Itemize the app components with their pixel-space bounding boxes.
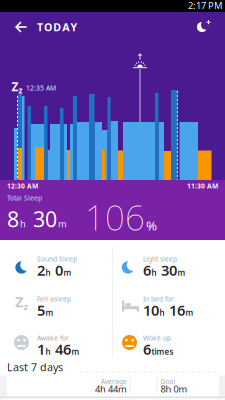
staticText: m [185, 307, 193, 318]
staticText: 46 [51, 339, 71, 359]
staticText: 12:30 AM [7, 182, 38, 190]
staticText: 0 [51, 260, 63, 280]
staticText: m [71, 346, 79, 357]
staticText: Light sleep [143, 255, 177, 263]
staticText: Fell asleep [37, 295, 71, 303]
staticText: Awake for [37, 334, 69, 342]
staticText: 106 [85, 194, 145, 240]
staticText: 2:17 PM [188, 0, 222, 12]
staticText: Z [11, 78, 18, 94]
staticText: 10 [143, 300, 159, 320]
staticText: m [58, 217, 67, 230]
staticText: Z [15, 292, 23, 311]
staticText: m [45, 307, 53, 318]
staticText: z [18, 85, 22, 96]
staticText: Average [101, 377, 127, 386]
staticText: 4h 44m [95, 383, 127, 395]
staticText: h [159, 307, 164, 318]
staticText: 1 [37, 339, 45, 359]
staticText: Woke up [143, 334, 171, 342]
staticText: h [45, 267, 50, 278]
staticText: 30 [157, 260, 177, 280]
staticText: TODAY [37, 20, 77, 34]
staticText: 8h 0m [160, 383, 187, 395]
staticText: 11:30 AM [187, 182, 218, 190]
staticText: 5 [37, 300, 45, 320]
button[interactable] [0, 0, 225, 400]
staticText: times [151, 346, 173, 357]
button[interactable] [0, 0, 225, 400]
staticText: 16 [165, 300, 185, 320]
staticText: h [20, 217, 26, 230]
staticText: 8 [7, 205, 19, 233]
staticText: Sound Sleep [37, 255, 77, 263]
staticText: 6 [143, 260, 151, 280]
staticText: Total Sleep [7, 194, 42, 202]
staticText: % [146, 216, 157, 234]
staticText: h [45, 346, 50, 357]
staticText: z [23, 300, 28, 313]
staticText: Last 7 days [7, 360, 63, 374]
staticText: 2 [37, 260, 45, 280]
staticText: h [151, 267, 156, 278]
staticText: m [63, 267, 71, 278]
button[interactable]: Last 7 days [0, 0, 225, 400]
staticText: 12:35 AM [26, 84, 56, 92]
staticText: m [177, 267, 185, 278]
staticText: In bed for [143, 295, 174, 303]
staticText: Goal [160, 377, 175, 386]
staticText: 30 [27, 205, 57, 233]
staticText: 6 [143, 339, 151, 359]
